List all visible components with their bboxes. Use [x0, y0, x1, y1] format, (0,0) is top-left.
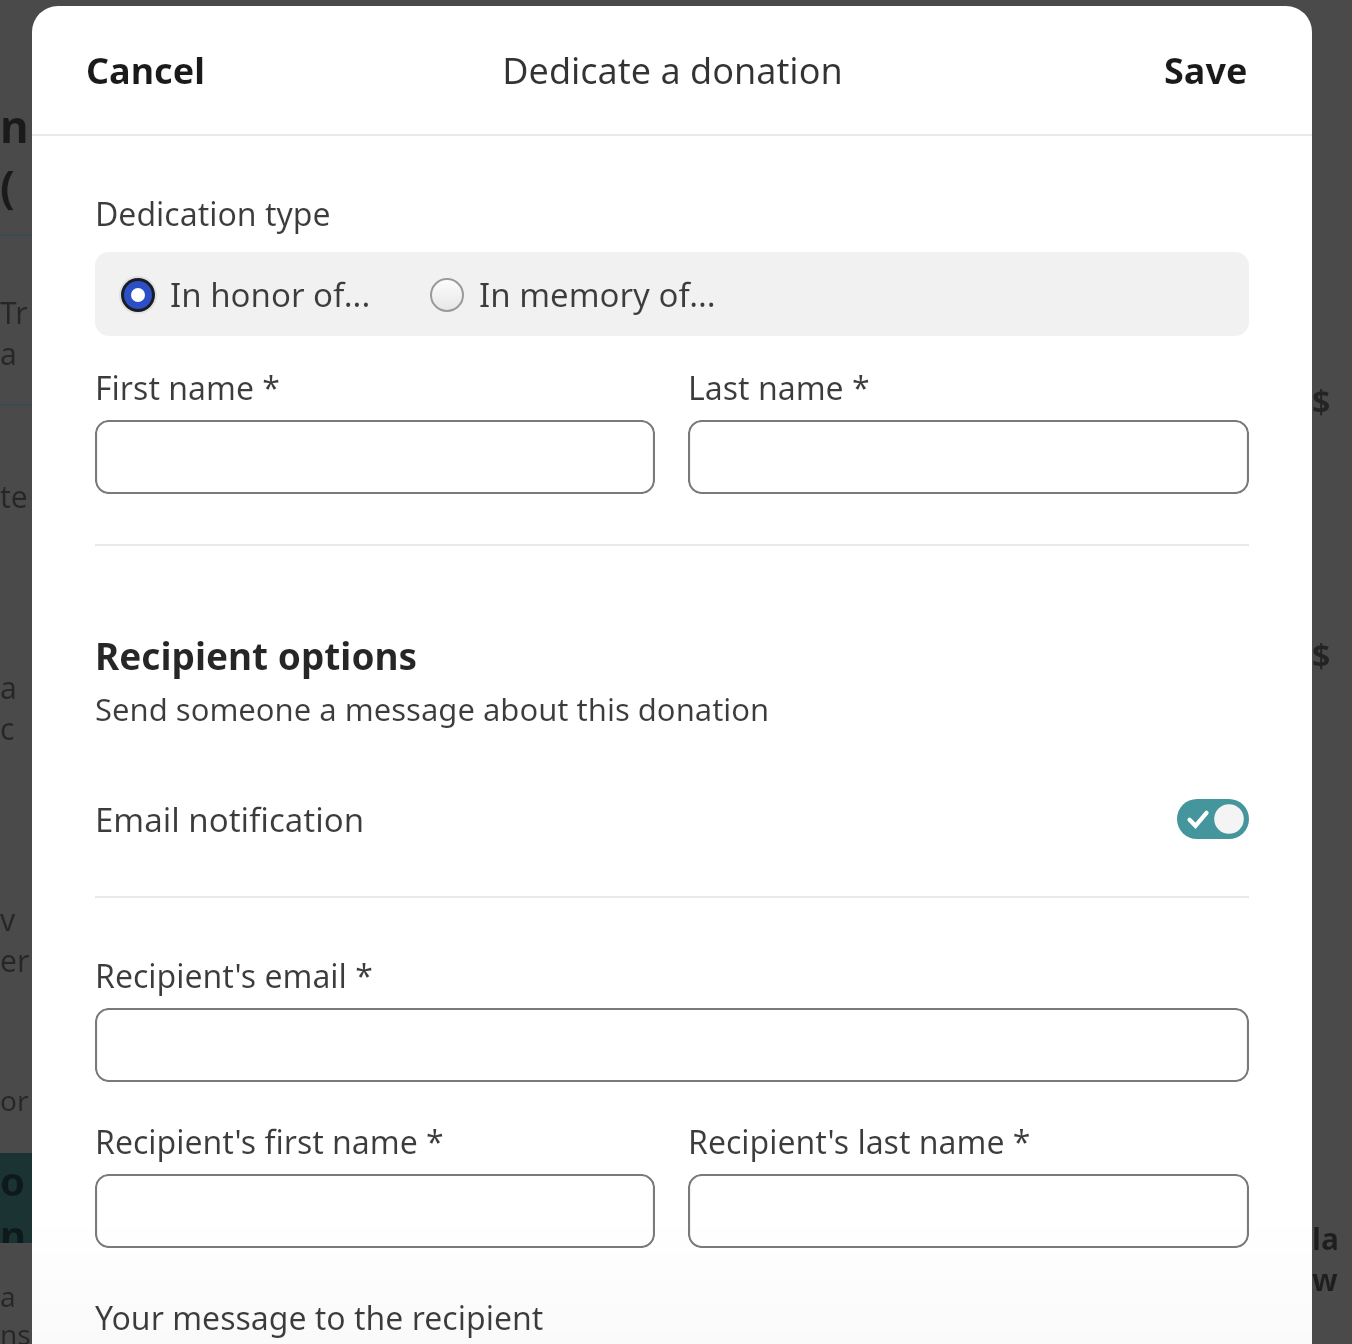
staticText: $: [1312, 380, 1331, 424]
button[interactable]: [95, 1008, 1249, 1082]
staticText: on: [0, 1153, 32, 1243]
staticText: Recipient's last name *: [688, 1120, 1031, 1164]
staticText: Recipient options: [95, 630, 418, 680]
staticText: Dedicate a donation: [502, 46, 843, 95]
staticText: $: [1312, 634, 1331, 678]
staticText: Last name *: [688, 366, 870, 410]
staticText: Send someone a message about this donati…: [95, 688, 770, 730]
staticText: a c: [0, 667, 32, 749]
button[interactable]: Email notification: [95, 784, 1249, 854]
staticText: Your message to the recipient: [95, 1296, 544, 1340]
staticText: In memory of...: [479, 272, 716, 317]
staticText: law: [1312, 1218, 1352, 1300]
button[interactable]: In honor of...: [118, 272, 371, 317]
staticText: Recipient's first name *: [95, 1120, 444, 1164]
staticText: Recipient's email *: [95, 954, 373, 998]
staticText: or: [0, 1081, 29, 1119]
button[interactable]: Save: [1146, 36, 1266, 105]
button[interactable]: Email notification toggle, on: [1177, 799, 1249, 839]
button[interactable]: Cancel: [68, 36, 223, 105]
staticText: Email notification: [95, 797, 365, 842]
staticText: ver: [0, 899, 32, 981]
staticText: ans: [0, 1277, 32, 1344]
staticText: te: [0, 476, 28, 517]
button[interactable]: [95, 420, 655, 494]
staticText: First name *: [95, 366, 280, 410]
staticText: Tra: [0, 292, 32, 374]
button[interactable]: [95, 1174, 655, 1248]
button[interactable]: [688, 420, 1249, 494]
button[interactable]: [688, 1174, 1249, 1248]
staticText: In honor of...: [170, 272, 371, 317]
button[interactable]: In memory of...: [427, 272, 716, 317]
staticText: n (: [0, 96, 32, 216]
staticText: Dedication type: [95, 192, 331, 236]
